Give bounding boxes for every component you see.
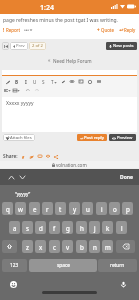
staticText: Xxxxx yyyyy	[6, 100, 34, 107]
staticText: n	[93, 243, 97, 251]
button[interactable]: l	[116, 221, 127, 234]
button[interactable]: Smilies	[85, 78, 94, 85]
staticText: v	[66, 243, 70, 251]
button[interactable]: space	[29, 259, 97, 272]
button[interactable]: a	[9, 221, 20, 234]
button[interactable]: Dictation	[119, 280, 128, 289]
staticText: “yyyyy”	[15, 191, 31, 197]
staticText: x	[39, 243, 43, 251]
button[interactable]: Strikethrough	[39, 78, 48, 85]
button[interactable]: c	[49, 240, 60, 253]
button[interactable]: volnation.com	[52, 162, 87, 168]
button[interactable]: r	[42, 202, 53, 215]
button[interactable]: More options	[94, 78, 103, 85]
staticText: w	[18, 205, 23, 213]
button[interactable]: y	[69, 202, 80, 215]
button[interactable]: Prev	[10, 42, 28, 50]
button[interactable]: List	[12, 87, 21, 94]
button[interactable]: Reply	[119, 27, 136, 33]
button[interactable]: Key	[116, 240, 135, 253]
button[interactable]: h	[76, 221, 87, 234]
button[interactable]: +	[97, 27, 114, 33]
staticText: Attach files	[10, 135, 32, 141]
staticText: !	[3, 27, 5, 33]
button[interactable]: First page	[2, 42, 9, 50]
button[interactable]: x	[35, 240, 46, 253]
staticText: volnation.com	[56, 162, 87, 168]
button[interactable]: q	[2, 202, 13, 215]
button[interactable]: Underline	[30, 78, 39, 85]
button[interactable]: t	[55, 202, 66, 215]
button[interactable]: Share on Twitter	[29, 154, 34, 159]
button[interactable]: f	[49, 221, 60, 234]
button[interactable]: More share options	[53, 154, 58, 159]
button[interactable]: Preview	[109, 134, 136, 141]
staticText: page refreshes minus the post tgat I was…	[3, 17, 118, 24]
button[interactable]: Insert link	[67, 78, 76, 85]
button[interactable]: b	[76, 240, 87, 253]
staticText: New posts	[113, 43, 134, 49]
button[interactable]: Insert image	[76, 78, 85, 85]
staticText: g	[66, 224, 70, 232]
button[interactable]: Remove formatting	[3, 78, 12, 85]
button[interactable]: Share by email	[45, 154, 50, 159]
staticText: z	[26, 243, 29, 251]
button[interactable]: Done	[119, 173, 134, 182]
staticText: Report	[6, 27, 20, 33]
button[interactable]: p	[122, 202, 133, 215]
button[interactable]: z	[22, 240, 33, 253]
staticText: Done	[120, 174, 133, 181]
staticText: space	[57, 262, 70, 269]
staticText: y	[73, 205, 77, 213]
button[interactable]: Previous field	[7, 173, 15, 181]
button[interactable]: i	[96, 202, 107, 215]
staticText: o	[113, 205, 117, 213]
button[interactable]: Key	[2, 240, 17, 253]
staticText: h	[80, 224, 84, 232]
button[interactable]: w	[15, 202, 26, 215]
staticText: 2 of 2	[32, 43, 43, 49]
button[interactable]: Emoji keyboard	[9, 280, 18, 289]
button[interactable]: Next field	[18, 173, 26, 181]
staticText: u	[86, 205, 90, 213]
button[interactable]: v	[62, 240, 73, 253]
staticText: Quote	[101, 27, 114, 33]
button[interactable]: Italic	[21, 78, 30, 85]
button[interactable]: Text size	[49, 78, 58, 85]
button[interactable]: s	[22, 221, 33, 234]
button[interactable]: return	[98, 259, 137, 272]
button[interactable]: 123	[2, 259, 27, 272]
button[interactable]: Post reply	[77, 134, 107, 141]
button[interactable]: Undo	[23, 87, 32, 94]
button[interactable]: o	[109, 202, 120, 215]
button[interactable]: Alignment	[3, 87, 12, 94]
button[interactable]: 2 of 2	[29, 42, 46, 50]
button[interactable]: Attach files	[3, 134, 35, 141]
button[interactable]: Text colour	[58, 78, 67, 85]
staticText: a	[13, 224, 17, 232]
button[interactable]: New posts	[106, 42, 137, 50]
button[interactable]: Share on Facebook	[21, 154, 26, 159]
button[interactable]: d	[35, 221, 46, 234]
staticText: t	[59, 205, 62, 213]
button[interactable]: !	[3, 27, 20, 33]
button[interactable]: «	[46, 55, 94, 66]
staticText: 123	[10, 262, 19, 269]
staticText: Prev	[16, 43, 25, 49]
button[interactable]: Share link	[37, 154, 42, 159]
button[interactable]: j	[89, 221, 100, 234]
staticText: l	[121, 224, 123, 232]
button[interactable]: k	[102, 221, 113, 234]
button[interactable]: m	[102, 240, 113, 253]
staticText: 1:24	[40, 3, 54, 13]
button[interactable]: More options	[24, 28, 33, 32]
button[interactable]: Redo	[32, 87, 41, 94]
button[interactable]: u	[82, 202, 93, 215]
button[interactable]: Bold	[12, 78, 21, 85]
staticText: U	[33, 79, 37, 85]
button[interactable]: n	[89, 240, 100, 253]
button[interactable]: g	[62, 221, 73, 234]
staticText: i	[101, 205, 103, 213]
button[interactable]: e	[29, 202, 40, 215]
staticText: m	[105, 243, 111, 251]
